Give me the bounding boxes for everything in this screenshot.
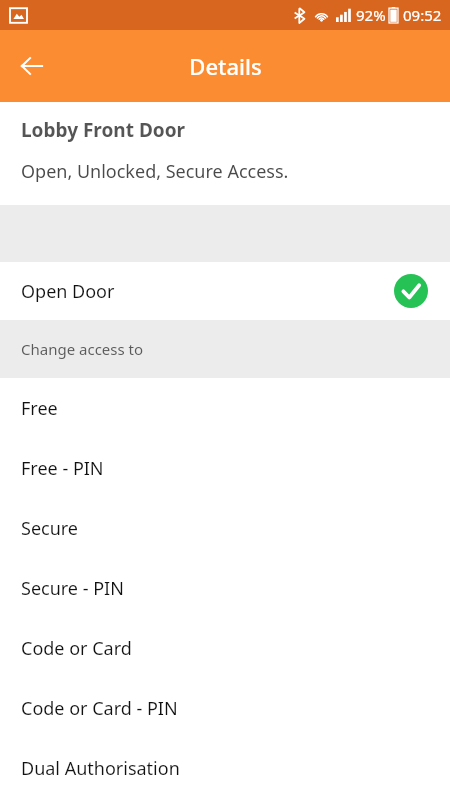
staticText: Free	[21, 396, 58, 421]
staticText: Code or Card - PIN	[21, 696, 178, 721]
button[interactable]: Code or Card - PIN	[0, 678, 450, 738]
button[interactable]: Code or Card	[0, 618, 450, 678]
staticText: Open, Unlocked, Secure Access.	[21, 159, 289, 184]
button[interactable]: Secure - PIN	[0, 558, 450, 618]
staticText: Dual Authorisation	[21, 756, 180, 781]
button[interactable]: Secure	[0, 498, 450, 558]
staticText: Lobby Front Door	[21, 117, 186, 143]
staticText: Details	[189, 51, 262, 81]
button[interactable]: Open Door	[0, 262, 450, 320]
staticText: Code or Card	[21, 636, 132, 661]
staticText: 09:52	[403, 5, 442, 25]
button[interactable]: Back	[8, 42, 56, 90]
staticText: Secure - PIN	[21, 576, 124, 601]
staticText: Change access to	[21, 339, 144, 359]
button[interactable]: Free - PIN	[0, 438, 450, 498]
staticText: Free - PIN	[21, 456, 104, 481]
staticText: 92%	[356, 5, 386, 25]
staticText: Secure	[21, 516, 79, 541]
staticText: Open Door	[21, 279, 115, 304]
button[interactable]: Dual Authorisation	[0, 738, 450, 798]
button[interactable]: Free	[0, 378, 450, 438]
